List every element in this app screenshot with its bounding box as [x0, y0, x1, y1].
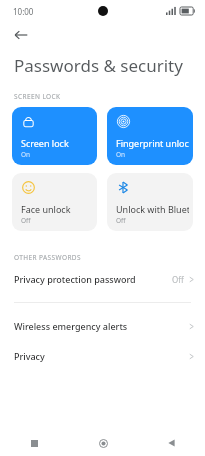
- button[interactable]: Screen lock: [12, 107, 97, 165]
- button[interactable]: Back: [9, 23, 33, 47]
- button[interactable]: Home: [69, 430, 137, 456]
- button[interactable]: Privacy protection password: [0, 268, 205, 290]
- button[interactable]: Face unlock: [12, 173, 97, 231]
- button[interactable]: Back: [137, 430, 205, 456]
- button[interactable]: Wireless emergency alerts: [0, 315, 205, 337]
- staticText: Off: [172, 274, 184, 285]
- staticText: Privacy protection password: [14, 273, 136, 285]
- button[interactable]: Unlock with Bluetooth: [107, 173, 193, 231]
- staticText: Unlock with Bluetooth: [116, 203, 189, 215]
- staticText: Face unlock: [21, 203, 71, 215]
- button[interactable]: Privacy: [0, 345, 205, 367]
- staticText: Fingerprint unlock: [116, 137, 189, 149]
- staticText: Wireless emergency alerts: [14, 320, 128, 332]
- staticText: OTHER PASSWORDS: [14, 253, 81, 262]
- staticText: Off: [21, 216, 31, 225]
- staticText: SCREEN LOCK: [14, 92, 61, 101]
- staticText: Privacy: [14, 350, 45, 362]
- staticText: On: [21, 150, 31, 159]
- staticText: On: [116, 150, 126, 159]
- staticText: Passwords & security: [14, 54, 183, 77]
- staticText: Screen lock: [21, 137, 69, 149]
- button[interactable]: Recent apps: [0, 430, 69, 456]
- button[interactable]: Fingerprint unlock: [107, 107, 193, 165]
- staticText: 10:00: [13, 6, 34, 17]
- staticText: Off: [116, 216, 126, 225]
